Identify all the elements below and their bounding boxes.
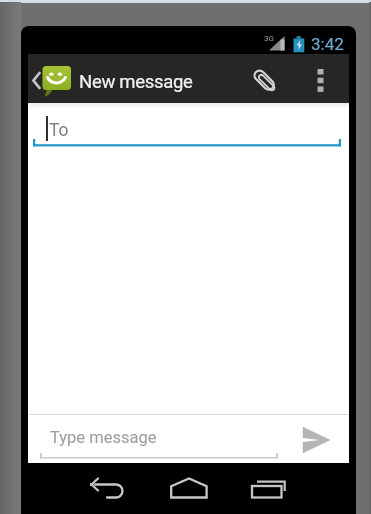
button[interactable] [288,416,349,461]
staticText: Type message [50,428,157,447]
button[interactable] [80,466,134,512]
button[interactable] [30,105,347,150]
staticText: 3:42 [311,34,344,54]
button[interactable] [238,54,290,103]
staticText: 3G [264,34,274,43]
staticText: To [49,120,69,141]
button[interactable] [238,466,292,512]
staticText: New message [79,71,193,93]
button[interactable] [28,54,78,103]
button[interactable] [296,54,349,103]
button[interactable] [32,418,287,461]
button[interactable] [160,466,216,512]
